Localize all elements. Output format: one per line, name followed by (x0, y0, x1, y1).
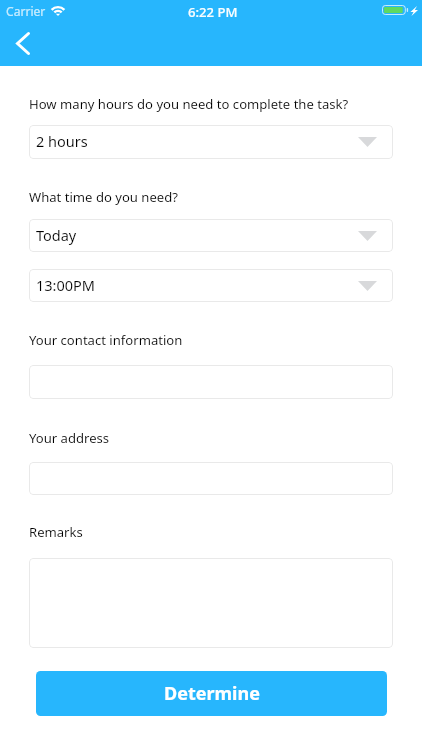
staticText: 2 hours (36, 131, 88, 151)
button[interactable]: 13:00PM (29, 269, 393, 302)
staticText: Remarks (29, 523, 83, 541)
button[interactable] (29, 462, 393, 495)
staticText: How many hours do you need to complete t… (29, 95, 349, 113)
staticText: Carrier (6, 3, 46, 19)
button[interactable]: 2 hours (29, 125, 393, 159)
button[interactable] (29, 558, 393, 648)
button[interactable]: Back (2, 23, 43, 64)
button[interactable] (29, 365, 393, 399)
button[interactable]: Today (29, 219, 393, 252)
staticText: Today (36, 225, 77, 245)
button[interactable]: Determine (36, 671, 387, 716)
staticText: What time do you need? (29, 188, 178, 206)
staticText: 13:00PM (36, 275, 95, 295)
staticText: Determine (164, 681, 260, 706)
staticText: Your contact information (29, 331, 183, 349)
staticText: 6:22 PM (188, 3, 238, 21)
staticText: Your address (29, 429, 110, 447)
